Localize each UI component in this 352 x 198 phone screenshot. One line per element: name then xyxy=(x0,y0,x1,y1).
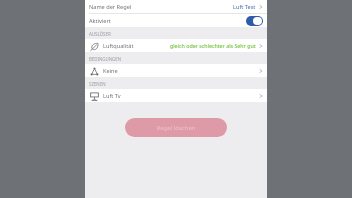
button[interactable]: Keine xyxy=(85,64,267,77)
staticText: Name der Regel xyxy=(89,3,132,11)
staticText: Keine xyxy=(103,67,118,75)
staticText: BEDINGUNGEN xyxy=(89,56,122,62)
staticText: Luft Tv xyxy=(103,92,121,100)
staticText: AUSLÖSER xyxy=(89,31,111,37)
staticText: SZENEN xyxy=(89,81,106,87)
staticText: gleich oder schlechter als Sehr gut xyxy=(170,42,256,49)
staticText: Luft Test xyxy=(233,3,256,11)
button[interactable]: Aktiviert xyxy=(85,14,267,27)
staticText: Luftqualität xyxy=(103,42,134,50)
staticText: Aktiviert xyxy=(89,17,111,25)
button[interactable]: Luft Tv xyxy=(85,89,267,102)
staticText: Regel löschen xyxy=(156,124,196,132)
button[interactable]: Aktiviert umschalten xyxy=(246,16,263,26)
button[interactable]: Regel löschen xyxy=(125,118,227,137)
button[interactable]: Luftqualität xyxy=(85,39,267,52)
button[interactable]: Name der Regel xyxy=(85,0,267,13)
